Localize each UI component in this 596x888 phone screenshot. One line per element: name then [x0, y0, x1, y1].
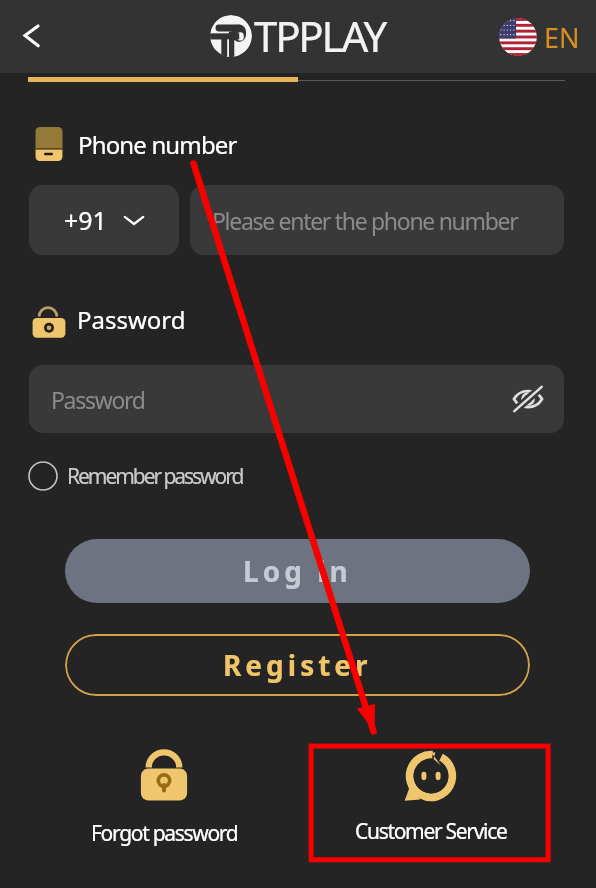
- button[interactable]: Password: [29, 365, 564, 433]
- staticText: EN: [544, 19, 580, 56]
- button[interactable]: +91: [29, 185, 179, 255]
- staticText: Password: [77, 303, 186, 336]
- staticText: Please enter the phone number: [212, 205, 518, 236]
- button[interactable]: Remember password: [24, 457, 247, 495]
- staticText: Customer Service: [355, 817, 507, 846]
- button[interactable]: Log in: [65, 539, 530, 603]
- button[interactable]: Back: [6, 12, 56, 62]
- staticText: Forgot password: [91, 819, 238, 848]
- button[interactable]: Show password: [506, 377, 550, 421]
- staticText: Phone number: [78, 128, 237, 161]
- staticText: +91: [64, 203, 107, 237]
- staticText: Remember password: [67, 462, 243, 491]
- staticText: Password: [51, 384, 145, 415]
- button[interactable]: Register: [65, 634, 530, 696]
- button[interactable]: Please enter the phone number: [190, 185, 564, 255]
- staticText: Register: [223, 646, 372, 684]
- staticText: TPPLAY: [254, 7, 386, 64]
- button[interactable]: EN: [499, 18, 580, 56]
- staticText: Log in: [243, 552, 352, 590]
- button[interactable]: Customer Service: [341, 747, 521, 846]
- button[interactable]: Forgot password: [74, 747, 254, 848]
